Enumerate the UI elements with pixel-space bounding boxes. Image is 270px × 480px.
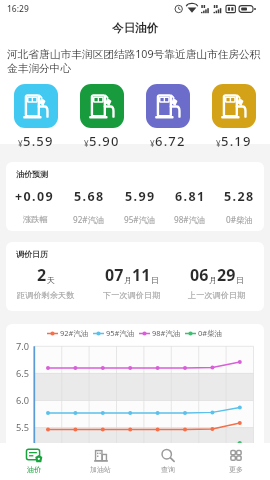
- staticText: 5.28: [224, 188, 255, 205]
- staticText: ¥: [150, 138, 155, 149]
- staticText: 5.99: [125, 188, 156, 205]
- staticText: 涨跌幅: [23, 214, 48, 224]
- staticText: 月: [124, 275, 132, 285]
- staticText: 今日油价: [112, 21, 158, 35]
- staticText: 6.5: [16, 367, 29, 380]
- staticText: 日: [236, 275, 244, 285]
- button[interactable]: 更多: [202, 443, 270, 480]
- staticText: 油价: [27, 465, 41, 474]
- staticText: 11: [132, 264, 151, 286]
- staticText: 查询: [161, 465, 175, 474]
- staticText: 5.5: [16, 421, 29, 434]
- button[interactable]: ¥: [14, 84, 58, 150]
- button[interactable]: ¥: [146, 84, 190, 150]
- staticText: 98#汽油: [152, 328, 181, 338]
- staticText: 下一次调价日期: [103, 290, 161, 300]
- staticText: 加油站: [90, 465, 111, 474]
- button[interactable]: ¥: [80, 84, 124, 150]
- staticText: 95#汽油: [124, 214, 156, 225]
- staticText: 上一次调价日期: [188, 290, 246, 300]
- button[interactable]: 加油站: [67, 443, 134, 480]
- staticText: 油价预测: [16, 169, 48, 179]
- staticText: 92#汽油: [60, 328, 89, 338]
- staticText: 29: [217, 264, 236, 286]
- staticText: 92#汽油: [73, 214, 105, 225]
- staticText: 16:29: [7, 3, 29, 15]
- staticText: ¥: [18, 138, 23, 149]
- staticText: 0#柴油: [198, 328, 223, 338]
- staticText: 0#柴油: [226, 214, 253, 225]
- staticText: 07: [105, 264, 124, 286]
- staticText: 6.72: [155, 132, 186, 150]
- staticText: 06: [190, 264, 209, 286]
- staticText: 2: [37, 264, 47, 286]
- staticText: 5.90: [89, 132, 120, 150]
- staticText: 天: [47, 275, 55, 285]
- button[interactable]: 油价: [0, 443, 67, 480]
- staticText: 月: [209, 275, 217, 285]
- staticText: 95#汽油: [106, 328, 135, 338]
- staticText: 河北省唐山市丰润区团结路109号靠近唐山市住房公积金丰润分中心: [7, 47, 261, 76]
- staticText: ¥: [216, 138, 221, 149]
- staticText: 5.59: [23, 132, 54, 150]
- staticText: 日: [151, 275, 159, 285]
- staticText: 距调价剩余天数: [17, 290, 75, 300]
- button[interactable]: ¥: [212, 84, 256, 150]
- staticText: 6.0: [16, 394, 29, 407]
- staticText: 6.81: [175, 188, 206, 205]
- staticText: 调价日历: [16, 249, 48, 259]
- staticText: 5.19: [221, 132, 252, 150]
- staticText: ¥: [84, 138, 89, 149]
- staticText: 5.68: [74, 188, 105, 205]
- staticText: 更多: [229, 465, 243, 474]
- staticText: +0.09: [15, 188, 55, 205]
- staticText: 98#汽油: [174, 214, 206, 225]
- staticText: 7.0: [16, 340, 29, 353]
- button[interactable]: 查询: [134, 443, 202, 480]
